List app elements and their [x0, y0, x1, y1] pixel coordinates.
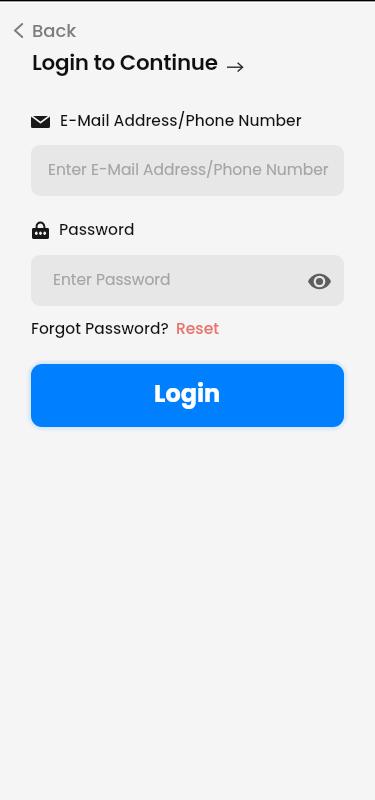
staticText: Back [32, 18, 77, 43]
staticText: Enter E-Mail Address/Phone Number [48, 159, 329, 181]
other: Continue [227, 60, 243, 74]
staticText: Reset [176, 318, 219, 340]
button[interactable]: Login [31, 364, 344, 427]
staticText: Login to Continue [32, 47, 218, 77]
button[interactable]: Show password [302, 264, 336, 298]
button[interactable]: Enter E-Mail Address/Phone Number [31, 145, 344, 196]
staticText: Enter Password [53, 269, 171, 291]
button[interactable]: Enter Password [31, 255, 344, 306]
staticText: E-Mail Address/Phone Number [60, 110, 302, 132]
button[interactable]: Back [10, 14, 87, 47]
staticText: Password [59, 219, 135, 241]
button[interactable]: Reset [176, 318, 219, 340]
staticText: Login [154, 377, 221, 411]
staticText: Forgot Password? [31, 318, 169, 340]
